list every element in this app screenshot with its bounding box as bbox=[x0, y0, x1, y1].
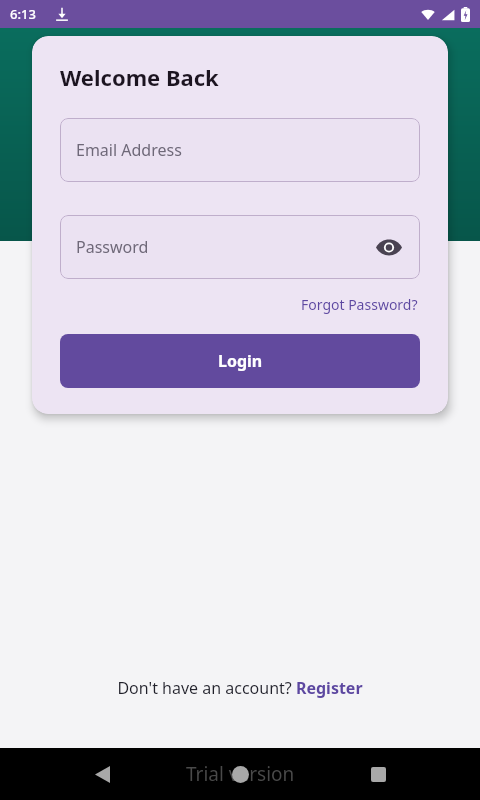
button[interactable]: Don't have an account? Register bbox=[113, 673, 367, 703]
staticText: 6:13 bbox=[10, 5, 36, 23]
staticText: Login bbox=[218, 350, 263, 372]
staticText: Trial version bbox=[186, 761, 295, 787]
staticText: Don't have an account? Register bbox=[117, 677, 363, 699]
button[interactable]: Back bbox=[85, 757, 119, 791]
button[interactable]: Login bbox=[60, 334, 420, 388]
staticText: Email Address bbox=[76, 139, 182, 161]
button[interactable]: Email Address bbox=[60, 118, 420, 182]
button[interactable]: Password bbox=[60, 215, 420, 279]
button[interactable]: Show password bbox=[374, 232, 404, 262]
button[interactable]: Forgot Password? bbox=[299, 293, 420, 316]
button[interactable]: Recent apps bbox=[361, 757, 395, 791]
staticText: Welcome Back bbox=[60, 62, 219, 92]
staticText: Password bbox=[76, 236, 149, 258]
staticText: Forgot Password? bbox=[301, 295, 418, 314]
button[interactable]: Home bbox=[223, 757, 257, 791]
